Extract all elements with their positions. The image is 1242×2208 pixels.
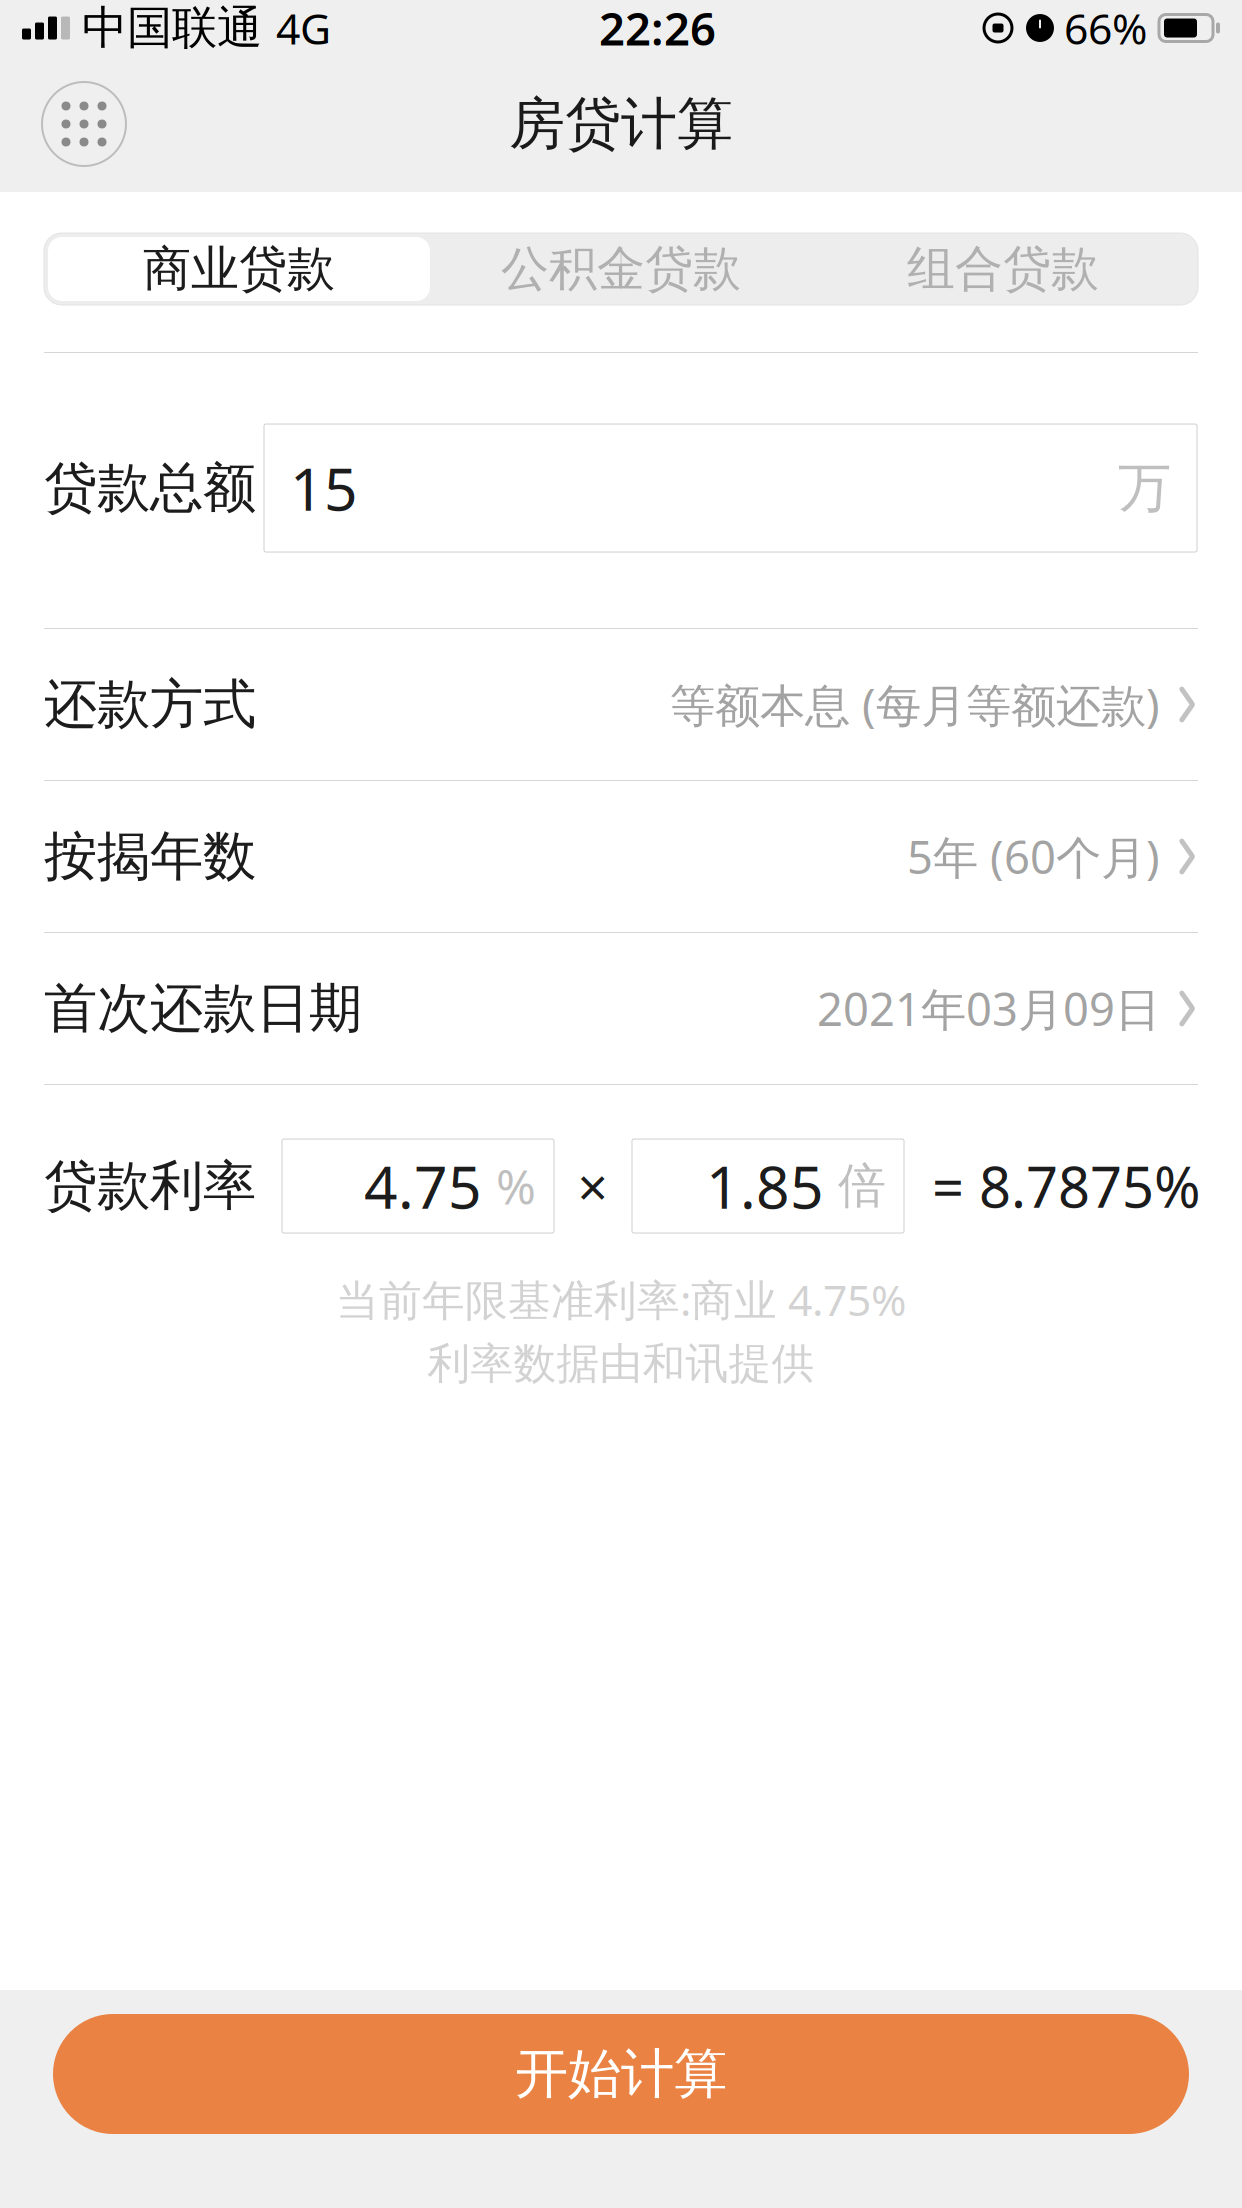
staticText: 22:26	[599, 0, 716, 58]
staticText: 倍	[838, 1156, 886, 1215]
button[interactable]: 应用	[36, 76, 132, 172]
button[interactable]: 还款方式	[0, 629, 1242, 780]
staticText: 贷款总额	[44, 455, 256, 521]
staticText: 贷款利率	[44, 1153, 256, 1219]
staticText: ×	[577, 1151, 608, 1221]
staticText: %	[496, 1154, 536, 1218]
button[interactable]: 组合贷款	[812, 237, 1194, 301]
staticText: 5年 (60个月)	[907, 826, 1160, 887]
staticText: 商业贷款	[143, 239, 335, 298]
staticText: 等额本息 (每月等额还款)	[670, 674, 1160, 735]
button[interactable]: 商业贷款	[48, 237, 430, 301]
button[interactable]: 公积金贷款	[430, 237, 812, 301]
staticText: 1.85	[706, 1147, 824, 1225]
button[interactable]: 首次还款日期	[0, 933, 1242, 1084]
staticText: 万	[1118, 455, 1171, 521]
button[interactable]: 按揭年数	[0, 781, 1242, 932]
staticText: 4G	[276, 0, 331, 56]
staticText: 首次还款日期	[44, 976, 362, 1041]
staticText: 15	[290, 449, 358, 527]
staticText: 利率数据由和讯提供	[427, 1338, 814, 1390]
staticText: 组合贷款	[907, 239, 1099, 298]
staticText: 按揭年数	[44, 824, 256, 889]
staticText: 房贷计算	[509, 90, 733, 158]
staticText: 4.75	[364, 1147, 482, 1225]
staticText: 公积金贷款	[501, 239, 741, 298]
staticText: 中国联通	[82, 0, 262, 56]
staticText: 开始计算	[515, 2041, 727, 2107]
staticText: 66%	[1064, 0, 1147, 56]
staticText: 当前年限基准利率:商业 4.75%	[336, 1271, 906, 1328]
staticText: = 8.7875%	[932, 1149, 1201, 1223]
staticText: 还款方式	[44, 672, 256, 737]
staticText: 2021年03月09日	[817, 978, 1160, 1039]
button[interactable]: 开始计算	[53, 2014, 1189, 2134]
